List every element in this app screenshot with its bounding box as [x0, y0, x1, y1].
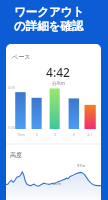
staticText: 高度: [10, 151, 22, 159]
staticText: 4: [66, 132, 82, 137]
button[interactable]: ペース: [6, 44, 101, 200]
staticText: 分/km: [52, 80, 65, 86]
staticText: 4:42: [46, 64, 70, 80]
staticText: ペース: [12, 53, 31, 61]
staticText: 5:30: [8, 125, 15, 130]
staticText: 1km: [13, 132, 29, 137]
staticText: 97m: [77, 163, 86, 168]
staticText: 4:30: [8, 85, 15, 90]
staticText: 4.1: [82, 132, 98, 137]
staticText: 2: [29, 132, 45, 137]
staticText: 30m: [53, 181, 62, 186]
staticText: の詳細を確認: [14, 19, 84, 33]
staticText: 3: [47, 132, 63, 137]
staticText: ワークアウト: [14, 5, 85, 19]
